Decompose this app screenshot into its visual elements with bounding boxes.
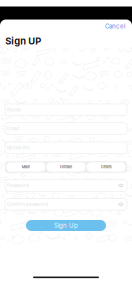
staticText: Email — [7, 126, 19, 131]
button[interactable]: Mobile No — [5, 142, 127, 154]
button[interactable]: Cancel — [100, 19, 130, 33]
button[interactable]: Female — [46, 162, 86, 172]
button[interactable]: Password — [5, 180, 127, 191]
staticText: Male — [22, 165, 30, 169]
button[interactable]: Others — [87, 162, 126, 172]
staticText: Female — [60, 165, 72, 169]
staticText: Mobile No — [7, 145, 30, 151]
staticText: Confirm password — [7, 201, 48, 207]
button[interactable]: Male — [6, 162, 45, 172]
staticText: Sign UP — [5, 35, 41, 47]
staticText: Others — [101, 165, 112, 169]
staticText: Cancel — [105, 22, 125, 30]
button[interactable]: Confirm password — [5, 198, 127, 210]
staticText: Name — [7, 107, 21, 113]
staticText: Password — [7, 183, 29, 188]
button[interactable]: Sign Up — [26, 220, 106, 231]
staticText: Sign Up — [54, 222, 78, 229]
button[interactable]: Name — [5, 104, 127, 116]
